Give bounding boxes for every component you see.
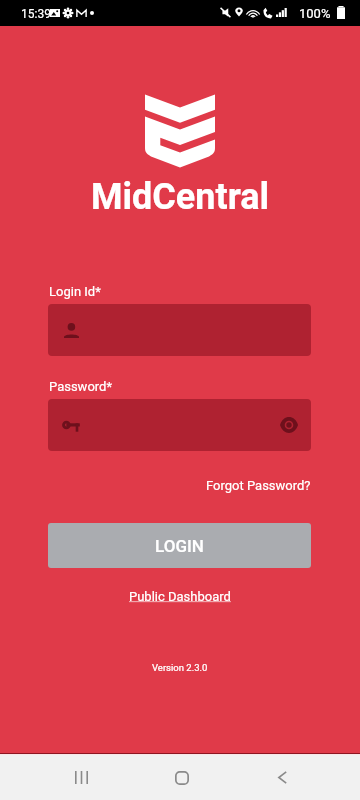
staticText: 100% [299, 6, 331, 21]
button[interactable] [48, 304, 311, 356]
button[interactable]: Recent apps [57, 753, 105, 800]
staticText: MidCentral [0, 176, 360, 218]
staticText: Version 2.3.0 [152, 662, 208, 673]
button[interactable]: Home [158, 753, 206, 800]
staticText: Login Id* [49, 284, 101, 299]
staticText: Password* [49, 379, 113, 394]
staticText: LOGIN [155, 536, 204, 556]
button[interactable]: Show password [48, 399, 311, 451]
staticText: 15:39 [21, 7, 51, 21]
button[interactable]: Public Dashboard [129, 589, 231, 604]
button[interactable]: Show password [280, 418, 298, 432]
button[interactable]: LOGIN [48, 523, 311, 568]
button[interactable]: Forgot Password? [206, 478, 311, 493]
button[interactable]: Back [258, 753, 306, 800]
